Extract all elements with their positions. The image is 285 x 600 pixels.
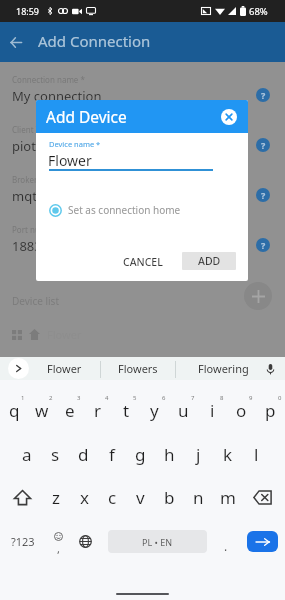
button[interactable]: Shift [0,477,42,517]
staticText: , [57,541,60,556]
button[interactable]: PL • EN [108,530,207,553]
staticText: CANCEL [123,255,163,269]
staticText: w [35,399,49,422]
button[interactable]: j [184,434,213,474]
staticText: 0 [278,394,282,402]
staticText: ?123 [11,534,35,549]
button[interactable]: s [41,434,69,474]
button[interactable]: ?123 [2,521,44,561]
button[interactable]: f [97,434,126,474]
button[interactable]: Expand suggestions [5,357,32,380]
staticText: 1883 [12,237,42,255]
staticText: PL • EN [142,536,173,548]
button[interactable]: x [70,477,98,517]
button[interactable]: Flower [12,327,82,342]
staticText: 18:59 [16,5,40,17]
staticText: b [164,486,175,509]
button[interactable]: Change language [72,521,98,561]
button[interactable]: Enter [247,531,278,552]
staticText: d [78,443,89,466]
staticText: . [224,538,228,554]
staticText: t [123,399,130,422]
button[interactable]: 7 [169,390,198,430]
button[interactable]: 4 [84,390,112,430]
button[interactable]: 3 [56,390,84,430]
button[interactable]: . [212,521,240,561]
button[interactable]: Flowers [104,357,171,380]
staticText: q [9,399,20,422]
button[interactable]: d [69,434,97,474]
button[interactable]: CANCEL [116,250,170,274]
staticText: 2 [49,394,53,402]
button[interactable]: Help [256,138,270,152]
staticText: ? [261,139,266,151]
button[interactable]: Backspace [242,477,285,517]
staticText: g [135,443,146,466]
button[interactable]: Set as connection home [45,199,185,221]
button[interactable]: Emoji and comma [44,521,72,561]
button[interactable]: 2 [28,390,56,430]
button[interactable]: g [126,434,155,474]
staticText: 3 [77,394,81,402]
staticText: Port number * [12,224,67,235]
button[interactable]: Voice input [259,357,281,380]
staticText: 1 [21,394,25,402]
button[interactable]: 8 [198,390,227,430]
staticText: 6 [162,394,166,402]
button[interactable]: 9 [227,390,256,430]
staticText: 68% [249,5,268,18]
button[interactable]: Close [219,107,239,127]
staticText: 8 [220,394,224,402]
staticText: Client ID * [12,124,51,135]
staticText: Broker address * [12,174,76,185]
button[interactable]: c [98,477,126,517]
staticText: p [265,399,276,422]
staticText: j [196,443,201,466]
button[interactable]: m [213,477,242,517]
button[interactable]: h [155,434,184,474]
staticText: Device list [12,294,59,308]
button[interactable]: Help [256,88,270,102]
staticText: Flowering [198,361,249,376]
button[interactable]: l [242,434,271,474]
staticText: i [210,399,215,422]
staticText: Connection name * [12,74,85,85]
staticText: 7 [191,394,195,402]
staticText: piotr-krzeslak [12,137,96,155]
staticText: 5 [133,394,137,402]
staticText: Add Connection [38,31,151,51]
button[interactable]: b [155,477,184,517]
staticText: ADD [198,254,221,268]
staticText: z [52,486,60,509]
staticText: ? [261,239,266,251]
button[interactable]: Back [4,30,28,54]
button[interactable]: 6 [140,390,169,430]
button[interactable]: Help [256,188,270,202]
staticText: Flower [47,361,82,376]
staticText: s [51,443,60,466]
button[interactable]: Flowering [178,357,268,380]
staticText: 9 [249,394,253,402]
staticText: v [136,486,145,509]
staticText: k [223,443,233,466]
button[interactable]: 1 [0,390,28,430]
staticText: o [236,399,247,422]
button[interactable]: z [42,477,70,517]
button[interactable]: 0 [256,390,285,430]
staticText: Flower [48,151,92,170]
staticText: x [80,486,89,509]
staticText: n [193,486,204,509]
button[interactable]: Help [256,238,270,252]
button[interactable]: Add device [244,282,272,310]
button[interactable]: a [13,434,41,474]
button[interactable]: 5 [112,390,140,430]
button[interactable]: Flower [36,357,93,380]
staticText: c [108,486,117,509]
staticText: h [164,443,175,466]
button[interactable]: n [184,477,213,517]
staticText: e [65,399,75,422]
button[interactable]: ADD [182,252,236,270]
button[interactable]: v [126,477,155,517]
button[interactable]: k [213,434,242,474]
